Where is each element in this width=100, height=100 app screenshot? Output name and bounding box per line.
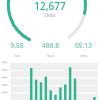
button[interactable]: 9.58	[0, 41, 34, 55]
staticText: kcal	[47, 53, 54, 58]
staticText: Steps	[44, 12, 56, 18]
staticText: 486.8	[42, 41, 59, 50]
button[interactable]: 05:13	[67, 41, 100, 55]
button[interactable]: Daily step goal progress	[0, 0, 100, 100]
button[interactable]: 486.8	[34, 41, 67, 55]
staticText: 12,677	[34, 0, 66, 13]
staticText: min	[80, 53, 87, 58]
staticText: km	[15, 53, 20, 58]
staticText: 05:13	[75, 41, 92, 50]
staticText: 9.58	[10, 41, 24, 50]
button[interactable]: Weekly activity chart	[0, 0, 100, 100]
